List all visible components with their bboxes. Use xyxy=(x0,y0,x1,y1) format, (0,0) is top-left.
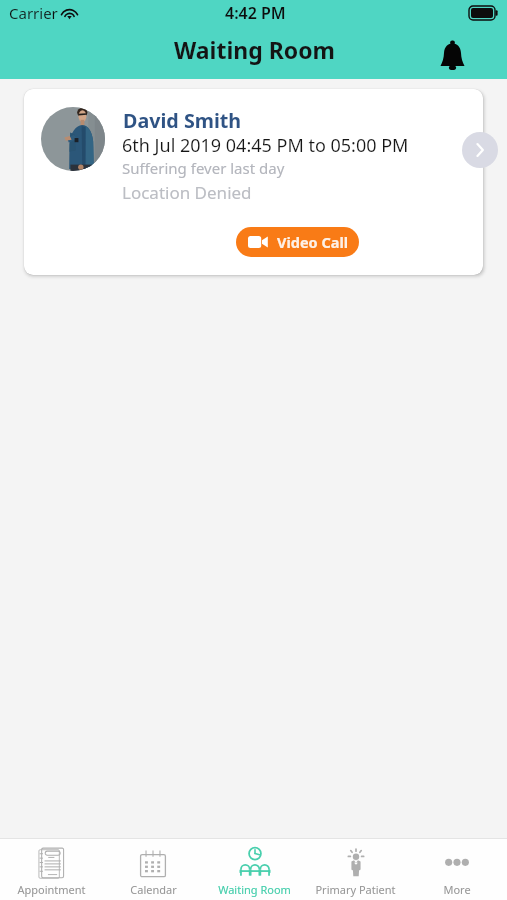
staticText: Waiting Room xyxy=(218,882,291,897)
staticText: Calendar xyxy=(130,882,177,897)
staticText: Primary Patient xyxy=(315,882,396,897)
staticText: More xyxy=(443,882,471,897)
staticText: David Smith xyxy=(123,107,242,134)
button[interactable]: Calendar xyxy=(102,839,204,900)
button[interactable]: Open details xyxy=(462,132,498,168)
staticText: Location Denied xyxy=(122,181,252,204)
button[interactable]: David Smith xyxy=(24,89,483,275)
staticText: Video Call xyxy=(277,232,349,252)
staticText: 4:42 PM xyxy=(225,2,286,24)
staticText: Suffering fever last day xyxy=(122,158,285,178)
button[interactable]: Primary Patient xyxy=(305,839,406,900)
staticText: Carrier xyxy=(9,3,58,23)
button[interactable]: Notifications xyxy=(432,35,472,75)
button[interactable]: Appointment xyxy=(0,839,102,900)
button[interactable]: Waiting Room xyxy=(204,839,305,900)
button[interactable]: More xyxy=(406,839,507,900)
button[interactable]: Video Call xyxy=(236,227,359,257)
staticText: 6th Jul 2019 04:45 PM to 05:00 PM xyxy=(122,133,409,158)
staticText: Waiting Room xyxy=(174,34,336,65)
staticText: Appointment xyxy=(17,882,86,897)
